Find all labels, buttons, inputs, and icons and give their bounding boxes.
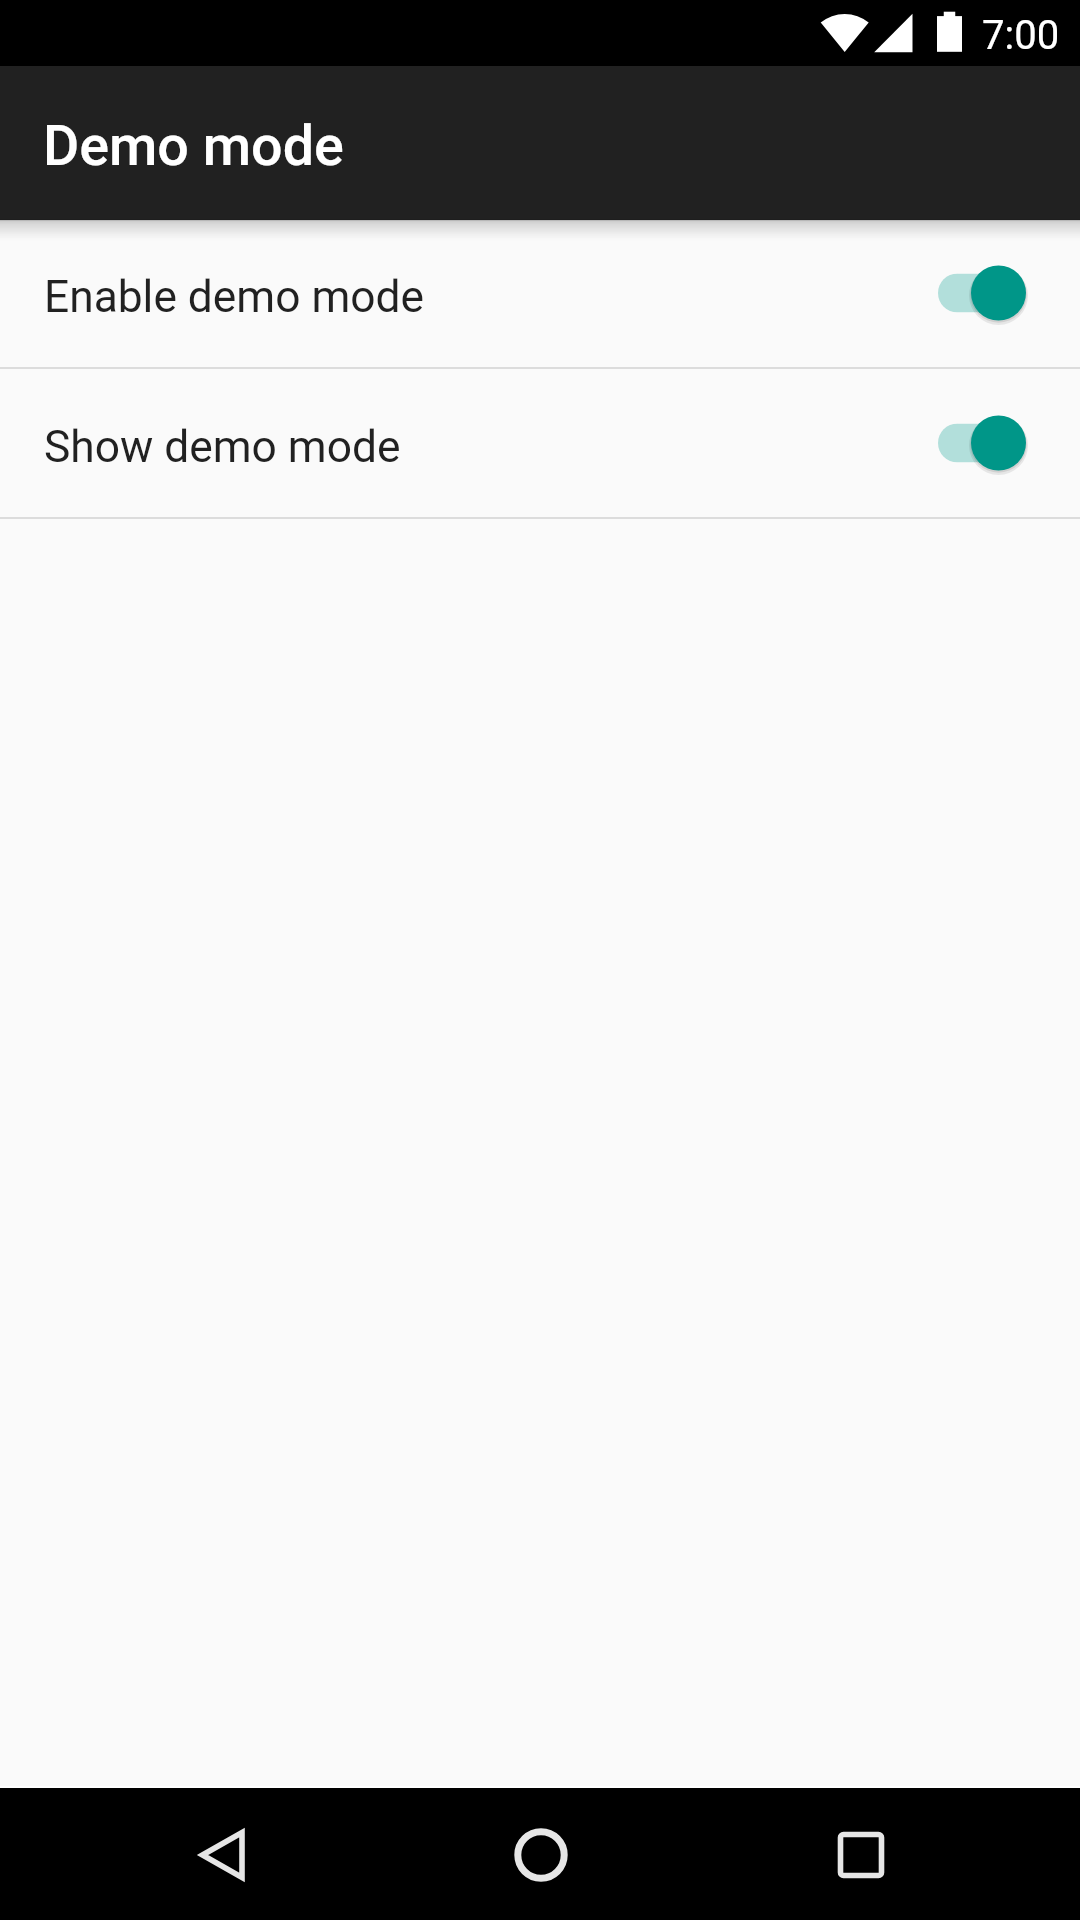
staticText: Enable demo mode (44, 271, 425, 323)
button[interactable]: Enable demo mode (0, 219, 1080, 367)
button[interactable]: Home (461, 1789, 621, 1920)
staticText: Demo mode (43, 114, 344, 179)
button[interactable]: Show demo mode (0, 369, 1080, 517)
button[interactable]: Recent apps (781, 1789, 941, 1920)
staticText: 7:00 (982, 12, 1060, 59)
staticText: Show demo mode (44, 421, 401, 473)
button[interactable]: Back (142, 1789, 302, 1920)
